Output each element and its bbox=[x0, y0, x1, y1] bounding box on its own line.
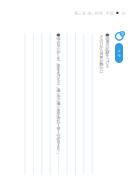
staticText: し bbox=[56, 52, 60, 58]
staticText: 静 bbox=[99, 61, 103, 67]
staticText: 遠 bbox=[56, 87, 60, 93]
staticText: あ bbox=[56, 70, 60, 76]
staticText: 雨 bbox=[56, 35, 60, 41]
staticText: の bbox=[99, 37, 103, 43]
staticText: に bbox=[56, 97, 60, 103]
staticText: モ bbox=[117, 52, 121, 58]
staticText: 第三章 遠い約束 bbox=[74, 10, 103, 16]
staticText: が bbox=[56, 135, 60, 141]
staticText: 。 bbox=[56, 59, 60, 65]
staticText: て bbox=[56, 121, 60, 127]
staticText: か bbox=[99, 44, 103, 50]
staticText: か bbox=[99, 65, 103, 71]
staticText: そ bbox=[99, 34, 103, 40]
button[interactable]: Notes bbox=[115, 43, 123, 63]
staticText: 日 bbox=[99, 41, 103, 47]
staticText: ● bbox=[105, 32, 109, 38]
staticText: 書 bbox=[105, 39, 109, 45]
staticText: い bbox=[56, 104, 60, 110]
staticText: え bbox=[56, 142, 60, 148]
staticText: と bbox=[56, 80, 60, 86]
staticText: が bbox=[99, 58, 103, 64]
staticText: 。 bbox=[56, 149, 60, 155]
staticText: 雲 bbox=[56, 108, 60, 114]
staticText: 匂 bbox=[56, 42, 60, 48]
staticText: を bbox=[56, 66, 60, 72]
staticText: る bbox=[56, 77, 60, 82]
staticText: 薄 bbox=[56, 101, 60, 107]
staticText: 見 bbox=[56, 139, 60, 145]
button[interactable]: Add comment bbox=[115, 31, 126, 42]
staticText: ゆ bbox=[56, 125, 60, 131]
staticText: た bbox=[56, 56, 60, 62]
staticText: い bbox=[56, 90, 60, 96]
staticText: を bbox=[105, 52, 109, 58]
staticText: が bbox=[56, 111, 60, 117]
staticText: 世 bbox=[99, 51, 103, 57]
staticText: に bbox=[99, 68, 103, 74]
staticText: け bbox=[105, 59, 109, 65]
staticText: 窓 bbox=[56, 63, 60, 69]
staticText: れ bbox=[56, 118, 60, 124]
staticText: つ bbox=[105, 56, 109, 62]
staticText: ら bbox=[99, 48, 103, 53]
staticText: る bbox=[105, 63, 109, 69]
staticText: の bbox=[105, 42, 109, 48]
staticText: の bbox=[56, 132, 60, 138]
staticText: 流 bbox=[56, 115, 60, 120]
staticText: 読 bbox=[105, 35, 109, 41]
staticText: 手紙 bbox=[106, 10, 114, 16]
staticText: た bbox=[56, 146, 60, 151]
staticText: 録 bbox=[105, 49, 109, 55]
staticText: い bbox=[56, 46, 60, 51]
staticText: ● bbox=[56, 32, 60, 38]
staticText: が bbox=[56, 49, 60, 55]
staticText: 界 bbox=[99, 54, 103, 60]
staticText: く bbox=[56, 128, 60, 134]
staticText: 、 bbox=[56, 83, 60, 89]
staticText: 24 bbox=[121, 10, 125, 16]
staticText: の bbox=[56, 39, 60, 45]
staticText: 記 bbox=[105, 46, 109, 51]
staticText: け bbox=[56, 73, 60, 79]
staticText: メ bbox=[117, 48, 121, 54]
staticText: 空 bbox=[56, 94, 60, 100]
